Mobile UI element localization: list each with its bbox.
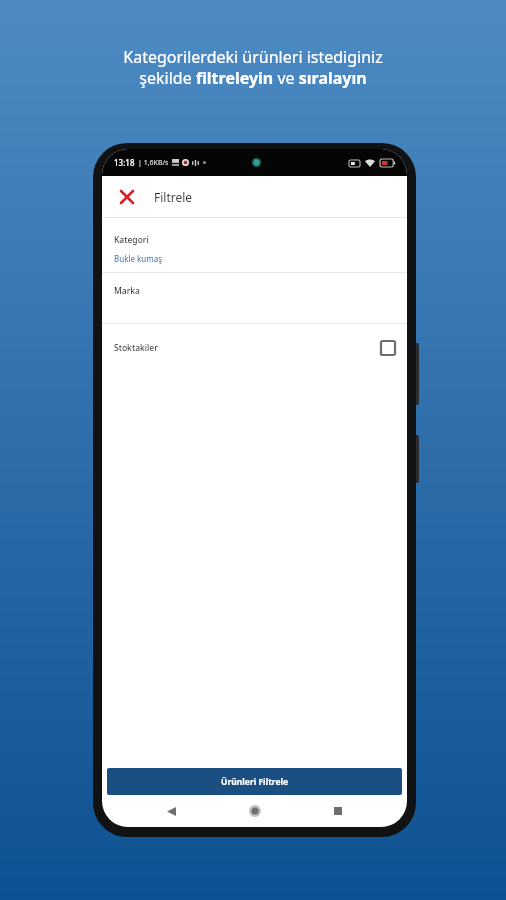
- button[interactable]: Marka: [102, 273, 407, 323]
- staticText: Bukle kumaş: [114, 253, 163, 264]
- staticText: Stoktakiler: [114, 342, 158, 354]
- button[interactable]: Ana ekran: [241, 797, 269, 825]
- staticText: Kategori: [114, 234, 149, 246]
- button[interactable]: Ürünleri Filtrele: [107, 768, 402, 795]
- staticText: Filtrele: [154, 189, 193, 205]
- button[interactable]: Kapat: [110, 180, 144, 214]
- staticText: Ürünleri Filtrele: [221, 776, 289, 788]
- button[interactable]: Kategori: [102, 234, 407, 264]
- staticText: Marka: [114, 285, 140, 297]
- staticText: 13:18: [114, 157, 135, 168]
- staticText: Kategorilerdeki ürünleri istediginiz şek…: [123, 46, 383, 89]
- button[interactable]: Geri: [157, 797, 185, 825]
- staticText: | 1,6KB/s: [138, 158, 169, 168]
- button[interactable]: Stoktakiler: [102, 324, 407, 372]
- button[interactable]: Son uygulamalar: [324, 797, 352, 825]
